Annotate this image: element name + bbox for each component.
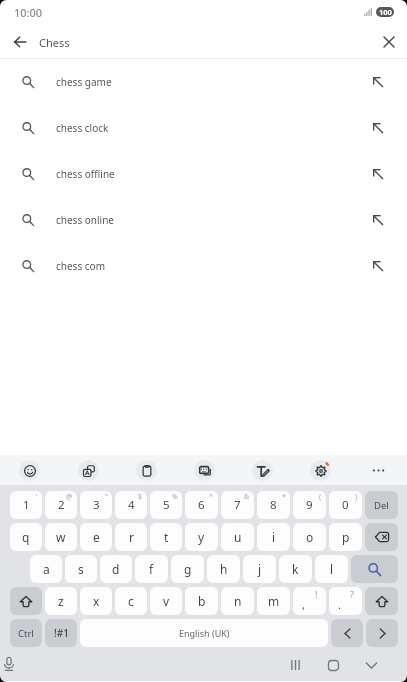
button[interactable]: 5 <box>150 491 182 519</box>
button[interactable]: Previous <box>331 619 363 647</box>
staticText: 9 <box>306 497 313 513</box>
staticText: ) <box>355 492 358 502</box>
button[interactable]: Use suggestion chess com <box>349 243 407 289</box>
button[interactable]: s <box>65 555 97 583</box>
staticText: . <box>338 597 341 612</box>
staticText: 100 <box>379 7 392 17</box>
button[interactable]: g <box>171 555 204 583</box>
staticText: chess online <box>56 213 349 227</box>
staticText: h <box>220 561 228 577</box>
button[interactable]: . <box>329 587 362 615</box>
staticText: 7 <box>234 497 241 513</box>
button[interactable]: Use suggestion chess online <box>349 197 407 243</box>
button[interactable]: l <box>315 555 348 583</box>
button[interactable]: 6 <box>185 491 218 519</box>
button[interactable]: h <box>207 555 240 583</box>
button[interactable]: Next <box>366 619 398 647</box>
button[interactable]: k <box>279 555 312 583</box>
button[interactable]: Home <box>321 653 345 677</box>
staticText: j <box>258 561 262 577</box>
button[interactable]: z <box>45 587 77 615</box>
button[interactable]: chess game <box>0 59 407 105</box>
button[interactable]: 1 <box>10 491 42 519</box>
staticText: 2 <box>58 497 65 513</box>
button[interactable]: 2 <box>45 491 77 519</box>
staticText: k <box>292 561 299 577</box>
button[interactable]: a <box>30 555 62 583</box>
button[interactable]: Back <box>0 26 39 58</box>
button[interactable]: English (UK) <box>80 619 328 647</box>
staticText: 8 <box>270 497 277 513</box>
button[interactable]: f <box>135 555 168 583</box>
button[interactable]: x <box>80 587 112 615</box>
button[interactable]: u <box>221 523 254 551</box>
button[interactable]: w <box>45 523 77 551</box>
button[interactable]: e <box>80 523 112 551</box>
button[interactable]: Shift <box>10 587 42 615</box>
staticText: p <box>342 529 350 545</box>
staticText: !#1 <box>54 626 69 640</box>
button[interactable]: p <box>329 523 362 551</box>
staticText: Chess <box>39 35 370 50</box>
button[interactable]: Shift <box>365 587 398 615</box>
button[interactable]: !#1 <box>45 619 77 647</box>
button[interactable]: i <box>257 523 290 551</box>
staticText: Ctrl <box>18 627 34 640</box>
button[interactable]: t <box>150 523 182 551</box>
staticText: a <box>43 561 50 577</box>
button[interactable]: Del <box>365 491 398 519</box>
staticText: 0 <box>342 497 349 513</box>
button[interactable]: Split keyboard <box>175 455 233 485</box>
button[interactable]: v <box>150 587 182 615</box>
button[interactable]: Backspace <box>365 523 398 551</box>
button[interactable]: Use suggestion chess offline <box>349 151 407 197</box>
button[interactable]: j <box>243 555 276 583</box>
button[interactable]: m <box>257 587 290 615</box>
staticText: ! <box>315 588 318 600</box>
button[interactable]: 8 <box>257 491 290 519</box>
button[interactable]: Recent apps <box>283 653 307 677</box>
staticText: 4 <box>128 497 135 513</box>
button[interactable]: Handwriting <box>233 455 291 485</box>
button[interactable]: Search <box>351 555 398 583</box>
button[interactable]: Use suggestion chess clock <box>349 105 407 151</box>
staticText: ^ <box>209 492 214 502</box>
staticText: c <box>128 593 134 609</box>
staticText: e <box>93 529 100 545</box>
button[interactable]: Use suggestion chess game <box>349 59 407 105</box>
staticText: r <box>129 529 134 545</box>
button[interactable]: Settings <box>291 455 349 485</box>
staticText: chess offline <box>56 167 349 181</box>
button[interactable]: Emoji <box>0 455 59 485</box>
button[interactable]: b <box>185 587 218 615</box>
button[interactable]: , <box>293 587 326 615</box>
staticText: d <box>112 561 120 577</box>
button[interactable]: o <box>293 523 326 551</box>
button[interactable]: More <box>349 455 407 485</box>
button[interactable]: 3 <box>80 491 112 519</box>
button[interactable]: 7 <box>221 491 254 519</box>
button[interactable]: chess clock <box>0 105 407 151</box>
button[interactable]: d <box>100 555 132 583</box>
button[interactable]: chess com <box>0 243 407 289</box>
button[interactable]: n <box>221 587 254 615</box>
button[interactable]: Clipboard <box>117 455 175 485</box>
staticText: v <box>163 593 170 609</box>
staticText: i <box>272 529 276 545</box>
button[interactable]: r <box>115 523 147 551</box>
button[interactable]: 0 <box>329 491 362 519</box>
button[interactable]: chess online <box>0 197 407 243</box>
button[interactable]: Hide keyboard <box>359 653 383 677</box>
staticText: l <box>330 561 334 577</box>
button[interactable]: y <box>185 523 218 551</box>
button[interactable]: chess offline <box>0 151 407 197</box>
button[interactable]: q <box>10 523 42 551</box>
staticText: 6 <box>198 497 205 513</box>
button[interactable]: Voice input <box>0 653 20 675</box>
button[interactable]: Ctrl <box>10 619 42 647</box>
button[interactable]: 4 <box>115 491 147 519</box>
button[interactable]: 9 <box>293 491 326 519</box>
button[interactable]: c <box>115 587 147 615</box>
button[interactable]: Translate <box>59 455 117 485</box>
button[interactable]: Clear search <box>370 26 407 58</box>
